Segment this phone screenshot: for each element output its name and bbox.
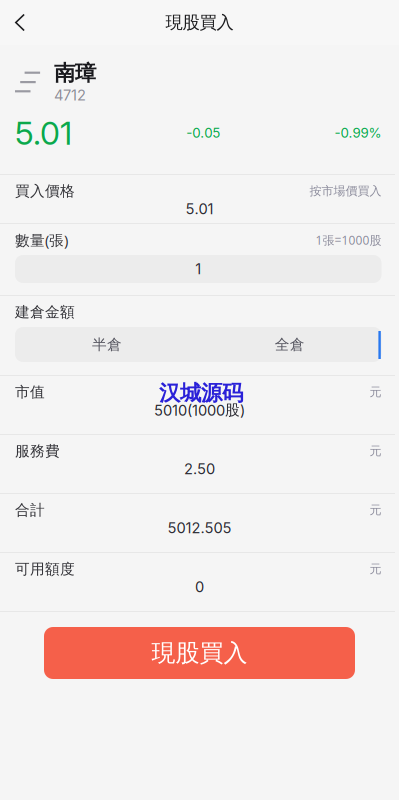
staticText: 可用額度 bbox=[15, 560, 75, 578]
staticText: 0 bbox=[195, 578, 204, 596]
staticText: 4712 bbox=[54, 86, 86, 104]
staticText: 合計 bbox=[15, 501, 45, 519]
staticText: 汉城源码 bbox=[159, 380, 243, 406]
staticText: 買入價格 bbox=[15, 182, 75, 200]
staticText: 5012.505 bbox=[167, 519, 231, 537]
staticText: -0.05 bbox=[186, 125, 220, 141]
staticText: 5010(1000股) bbox=[154, 401, 245, 419]
staticText: 1張=1000股 bbox=[315, 232, 381, 248]
staticText: -0.99% bbox=[334, 125, 381, 141]
staticText: 服務費 bbox=[15, 442, 60, 460]
staticText: 現股買入 bbox=[165, 12, 233, 33]
staticText: 數量(張) bbox=[15, 230, 68, 250]
button[interactable]: 1 bbox=[15, 255, 381, 283]
staticText: 南璋 bbox=[54, 60, 96, 86]
button[interactable]: Order book bbox=[15, 72, 40, 92]
staticText: 按市場價買入 bbox=[309, 184, 381, 198]
staticText: 2.50 bbox=[184, 460, 215, 478]
staticText: 建倉金額 bbox=[15, 303, 75, 321]
button[interactable]: 半倉 bbox=[15, 327, 198, 362]
button[interactable]: 全倉 bbox=[198, 327, 381, 362]
staticText: 元 bbox=[369, 562, 381, 576]
staticText: 市值 bbox=[15, 383, 45, 401]
staticText: 1 bbox=[195, 260, 201, 278]
staticText: 5.01 bbox=[15, 114, 72, 152]
staticText: 元 bbox=[369, 503, 381, 517]
button[interactable]: 現股買入 bbox=[44, 627, 355, 679]
staticText: 現股買入 bbox=[151, 638, 247, 668]
staticText: 5.01 bbox=[185, 200, 213, 218]
staticText: 全倉 bbox=[275, 335, 305, 353]
staticText: 元 bbox=[369, 444, 381, 458]
staticText: 元 bbox=[369, 385, 381, 399]
staticText: 半倉 bbox=[92, 335, 122, 353]
button[interactable]: Back bbox=[0, 2, 40, 42]
